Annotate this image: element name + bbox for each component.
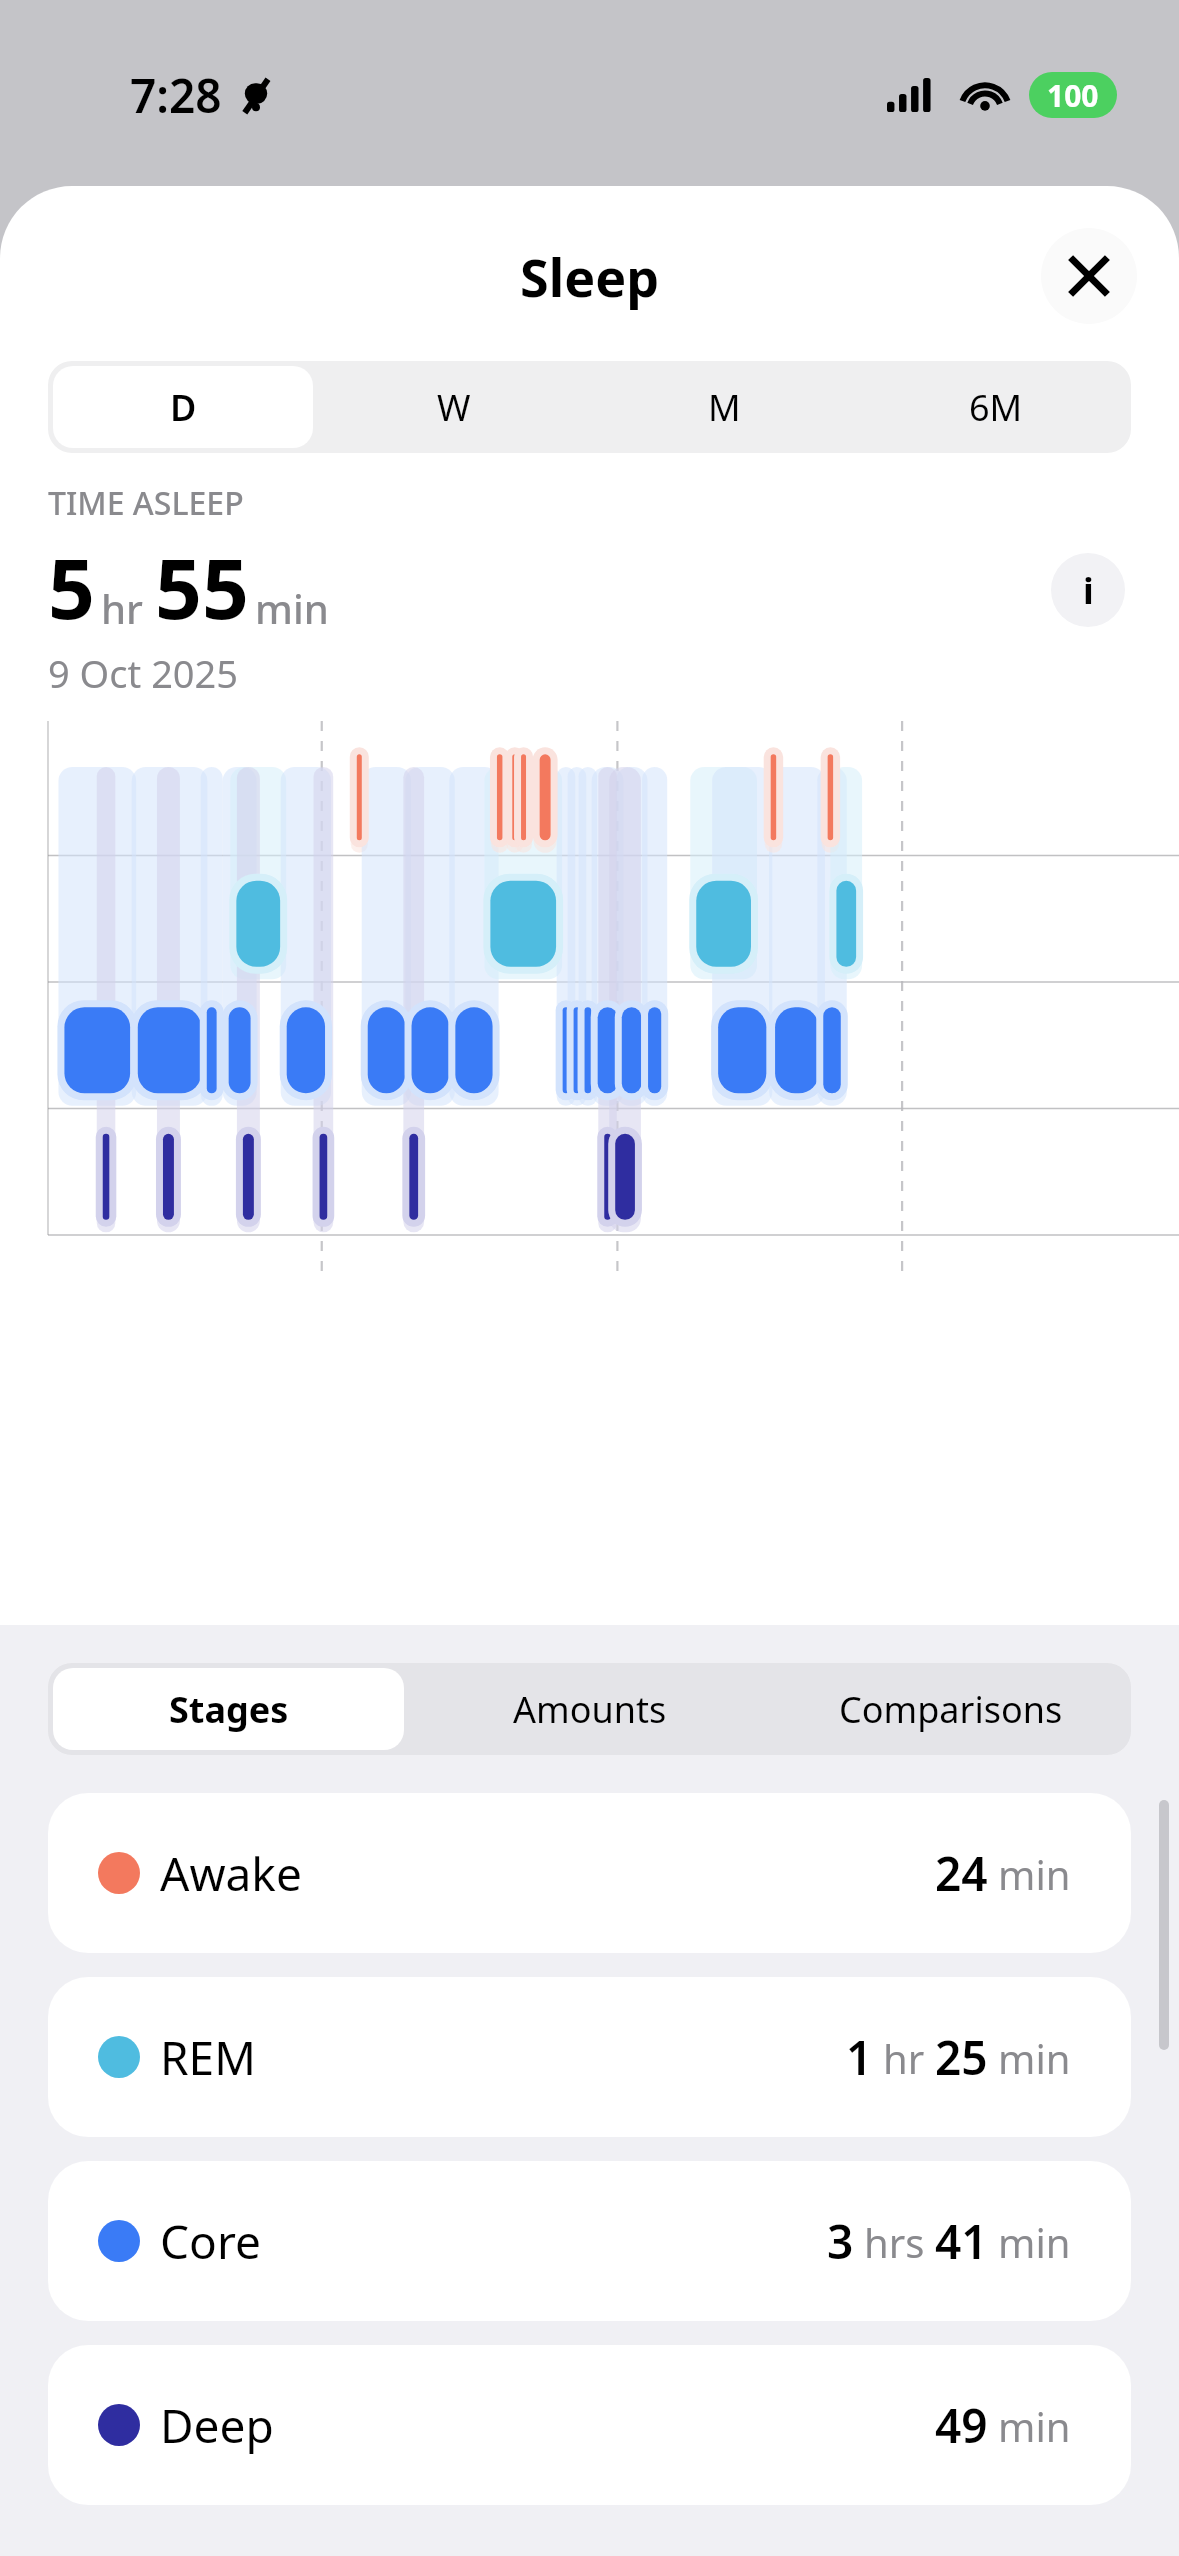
staticText: 24: [935, 1842, 988, 1905]
staticText: i: [1083, 566, 1094, 615]
staticText: 3: [827, 2210, 854, 2273]
button[interactable]: Info: [1051, 553, 1125, 627]
staticText: REM: [160, 2026, 256, 2089]
staticText: 1: [846, 2026, 873, 2089]
staticText: hrs: [864, 2215, 925, 2269]
staticText: Sleep: [520, 241, 660, 312]
staticText: TIME ASLEEP: [48, 481, 244, 525]
staticText: 9 Oct 2025: [48, 647, 239, 699]
staticText: 49: [935, 2394, 988, 2457]
button[interactable]: 6M: [865, 366, 1126, 448]
staticText: 5: [48, 531, 95, 643]
staticText: 7:28: [130, 64, 222, 127]
staticText: 100: [1047, 75, 1099, 116]
staticText: min: [998, 2031, 1071, 2085]
staticText: Core: [160, 2210, 261, 2273]
button[interactable]: Close: [1041, 228, 1137, 324]
button[interactable]: REM: [48, 1977, 1131, 2137]
staticText: 55: [155, 531, 249, 643]
button[interactable]: M: [594, 366, 855, 448]
button[interactable]: Deep: [48, 2345, 1131, 2505]
staticText: hr: [101, 581, 143, 635]
staticText: Awake: [160, 1842, 302, 1905]
staticText: Deep: [160, 2394, 274, 2457]
staticText: 41: [935, 2210, 988, 2273]
staticText: 6M: [969, 383, 1023, 432]
staticText: min: [255, 581, 329, 635]
button[interactable]: W: [323, 366, 584, 448]
button[interactable]: Awake: [48, 1793, 1131, 1953]
button[interactable]: Amounts: [414, 1668, 765, 1750]
button[interactable]: Comparisons: [775, 1668, 1126, 1750]
staticText: M: [708, 383, 741, 432]
staticText: Stages: [169, 1685, 289, 1734]
staticText: min: [998, 1847, 1071, 1901]
button[interactable]: D: [53, 366, 313, 448]
button[interactable]: Core: [48, 2161, 1131, 2321]
button[interactable]: Stages: [53, 1668, 404, 1750]
staticText: D: [170, 383, 197, 432]
staticText: min: [998, 2399, 1071, 2453]
staticText: min: [998, 2215, 1071, 2269]
staticText: W: [437, 383, 471, 432]
staticText: Comparisons: [839, 1685, 1063, 1734]
staticText: 25: [935, 2026, 988, 2089]
staticText: Amounts: [513, 1685, 667, 1734]
staticText: hr: [883, 2031, 925, 2085]
